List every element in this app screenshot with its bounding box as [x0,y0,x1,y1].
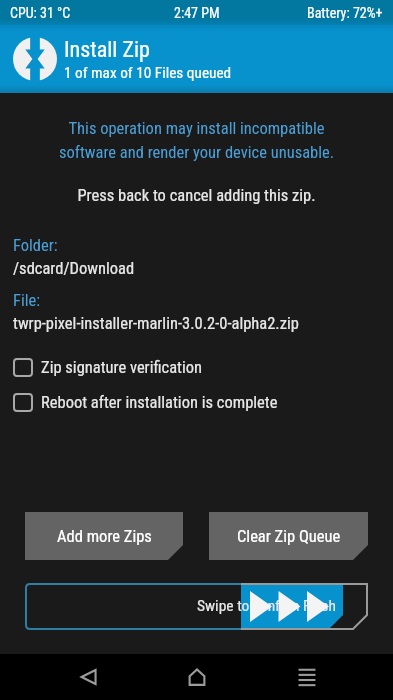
staticText: Press back to cancel adding this zip. [0,186,393,205]
staticText: Swipe to confirm Flash [197,597,336,615]
staticText: twrp-pixel-installer-marlin-3.0.2-0-alph… [13,314,299,333]
button[interactable]: Swipe to confirm Flash [25,583,368,630]
staticText: /sdcard/Download [13,259,135,278]
button[interactable]: Back [61,654,115,700]
staticText: Folder: [13,236,58,255]
button[interactable]: Clear Zip Queue [209,512,368,560]
staticText: This operation may install incompatible … [0,119,393,162]
staticText: CPU: 31 °C [10,5,71,21]
button[interactable]: Reboot after installation is complete [0,389,393,416]
staticText: Clear Zip Queue [237,527,341,546]
button[interactable]: Home [170,654,224,700]
button[interactable]: Zip signature verification [0,354,393,381]
staticText: File: [13,291,41,310]
staticText: Battery: 72%+ [307,5,383,21]
staticText: 1 of max of 10 Files queued [64,64,232,82]
staticText: 2:47 PM [174,5,220,21]
button[interactable]: Recent apps [280,654,334,700]
staticText: Install Zip [64,37,150,63]
button[interactable]: Add more Zips [25,512,183,560]
staticText: Reboot after installation is complete [41,393,278,412]
staticText: Zip signature verification [41,358,202,377]
staticText: Add more Zips [57,527,152,546]
